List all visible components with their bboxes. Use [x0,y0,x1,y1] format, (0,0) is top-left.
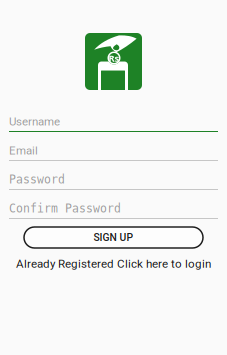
staticText: Password [9,173,65,186]
staticText: Confirm Password [9,202,121,215]
staticText: SIGN UP [93,231,133,243]
button[interactable]: Username [9,117,218,132]
staticText: Email [9,144,38,157]
staticText: Already Registered Click here to login [16,257,211,271]
staticText: Rs [108,52,119,64]
button[interactable]: SIGN UP [24,227,203,248]
button[interactable]: Password [9,175,218,190]
staticText: Username [9,115,60,128]
button[interactable]: Email [9,146,218,161]
button[interactable]: Already Registered Click here to login [16,257,211,271]
button[interactable]: Confirm Password [9,204,218,219]
